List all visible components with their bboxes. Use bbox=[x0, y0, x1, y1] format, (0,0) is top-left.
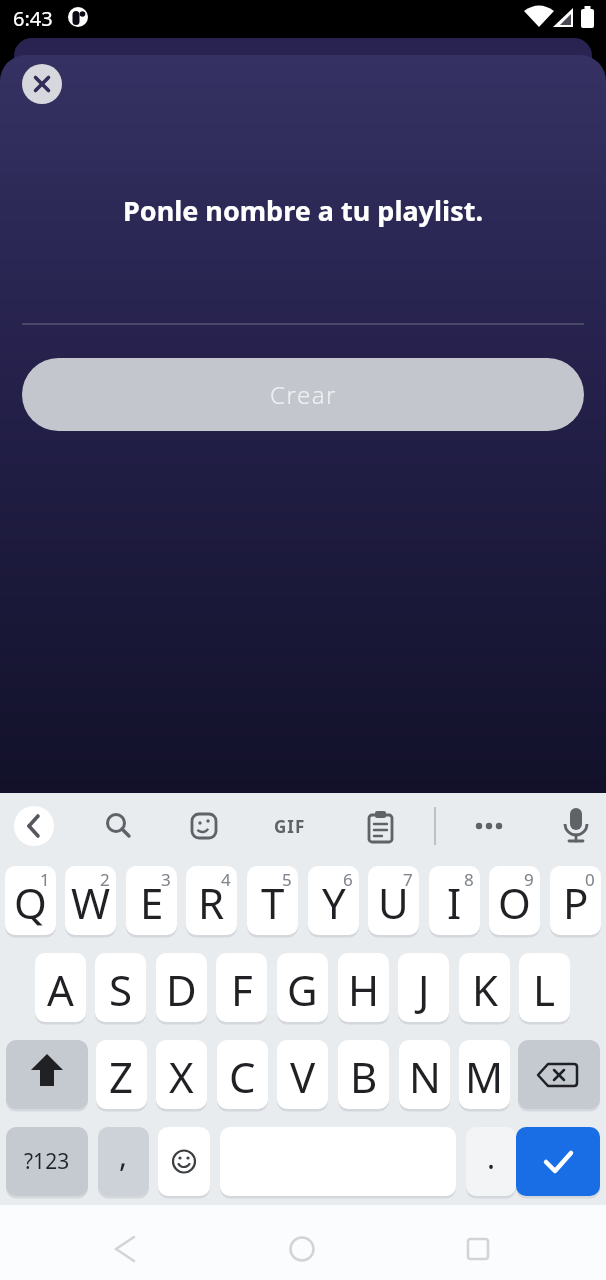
staticText: 6 bbox=[343, 868, 353, 891]
button[interactable]: ?123 bbox=[6, 1127, 88, 1196]
button[interactable]: B bbox=[338, 1040, 389, 1109]
staticText: T bbox=[261, 874, 285, 931]
button[interactable] bbox=[518, 1040, 600, 1109]
staticText: O bbox=[498, 874, 531, 931]
staticText: 2 bbox=[100, 868, 110, 891]
staticText: Crear bbox=[270, 378, 337, 411]
staticText: Q bbox=[14, 874, 47, 931]
button[interactable] bbox=[6, 1040, 88, 1109]
button[interactable]: V bbox=[277, 1040, 328, 1109]
button[interactable]: W bbox=[65, 866, 116, 935]
staticText: , bbox=[119, 1135, 128, 1176]
button[interactable]: T bbox=[247, 866, 298, 935]
staticText: . bbox=[487, 1137, 496, 1178]
staticText: E bbox=[140, 874, 164, 931]
staticText: I bbox=[447, 874, 462, 931]
staticText: A bbox=[47, 961, 74, 1018]
staticText: 9 bbox=[524, 868, 534, 891]
button[interactable]: I bbox=[429, 866, 480, 935]
button[interactable]: , bbox=[98, 1127, 149, 1196]
staticText: 8 bbox=[464, 868, 474, 891]
staticText: Z bbox=[109, 1048, 134, 1105]
staticText: 6:43 bbox=[13, 5, 53, 32]
button[interactable]: N bbox=[399, 1040, 450, 1109]
staticText: R bbox=[198, 874, 225, 931]
button[interactable]: D bbox=[156, 953, 207, 1022]
staticText: 4 bbox=[221, 868, 231, 891]
staticText: H bbox=[348, 961, 380, 1018]
staticText: U bbox=[378, 874, 409, 931]
button[interactable] bbox=[158, 1127, 210, 1196]
staticText: M bbox=[465, 1048, 504, 1105]
staticText: X bbox=[169, 1048, 194, 1105]
button[interactable]: O bbox=[489, 866, 540, 935]
staticText: W bbox=[71, 874, 111, 931]
staticText: F bbox=[231, 961, 253, 1018]
button[interactable]: J bbox=[398, 953, 449, 1022]
staticText: ?123 bbox=[24, 1147, 70, 1176]
button[interactable]: R bbox=[186, 866, 237, 935]
staticText: B bbox=[350, 1048, 378, 1105]
button[interactable]: G bbox=[277, 953, 328, 1022]
button[interactable]: Z bbox=[96, 1040, 147, 1109]
button[interactable]: Y bbox=[308, 866, 359, 935]
staticText: 0 bbox=[585, 868, 595, 891]
button[interactable]: P bbox=[550, 866, 601, 935]
staticText: L bbox=[533, 961, 556, 1018]
staticText: Ponle nombre a tu playlist. bbox=[0, 192, 606, 229]
staticText: 5 bbox=[282, 868, 292, 891]
button[interactable]: E bbox=[126, 866, 177, 935]
staticText: J bbox=[418, 961, 430, 1018]
button[interactable]: Q bbox=[5, 866, 56, 935]
button[interactable]: U bbox=[368, 866, 419, 935]
button[interactable]: F bbox=[216, 953, 267, 1022]
staticText: C bbox=[229, 1048, 256, 1105]
staticText: V bbox=[290, 1048, 316, 1105]
staticText: 1 bbox=[40, 868, 50, 891]
button[interactable] bbox=[14, 806, 54, 846]
button[interactable]: . bbox=[466, 1127, 516, 1196]
staticText: Y bbox=[322, 874, 346, 931]
button[interactable]: C bbox=[217, 1040, 268, 1109]
button[interactable]: Crear bbox=[22, 358, 584, 431]
staticText: 3 bbox=[161, 868, 171, 891]
staticText: S bbox=[109, 961, 133, 1018]
staticText: K bbox=[472, 961, 498, 1018]
button[interactable]: X bbox=[156, 1040, 207, 1109]
staticText: 7 bbox=[403, 868, 413, 891]
staticText: GIF bbox=[274, 815, 306, 838]
button[interactable]: H bbox=[338, 953, 389, 1022]
button[interactable]: L bbox=[519, 953, 570, 1022]
button[interactable] bbox=[22, 64, 62, 104]
staticText: D bbox=[166, 961, 197, 1018]
button[interactable]: K bbox=[459, 953, 510, 1022]
button[interactable] bbox=[516, 1127, 600, 1196]
button[interactable]: A bbox=[35, 953, 86, 1022]
button[interactable]: S bbox=[95, 953, 146, 1022]
button[interactable]: M bbox=[459, 1040, 510, 1109]
staticText: P bbox=[563, 874, 589, 931]
staticText: N bbox=[409, 1048, 441, 1105]
staticText: G bbox=[287, 961, 318, 1018]
